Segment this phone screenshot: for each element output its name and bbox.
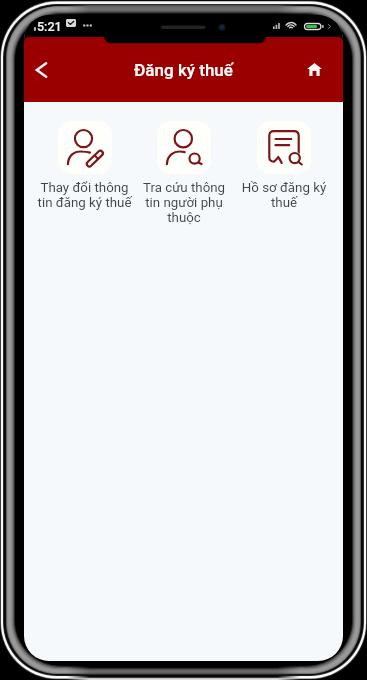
staticText: Tra cứu thông tin người phụ thuộc	[135, 180, 233, 225]
button[interactable]: Thay đổi thông tin đăng ký thuế	[35, 121, 134, 210]
button[interactable]: Tra cứu thông tin người phụ thuộc	[134, 121, 234, 225]
button[interactable]: Hồ sơ đăng ký thuế	[234, 121, 334, 210]
staticText: Hồ sơ đăng ký thuế	[235, 180, 333, 210]
button[interactable]: Back	[24, 37, 58, 102]
staticText: Đăng ký thuế	[134, 60, 233, 80]
staticText: 5:21	[37, 19, 62, 34]
button[interactable]: Home	[286, 37, 343, 102]
staticText: Thay đổi thông tin đăng ký thuế	[36, 180, 133, 210]
